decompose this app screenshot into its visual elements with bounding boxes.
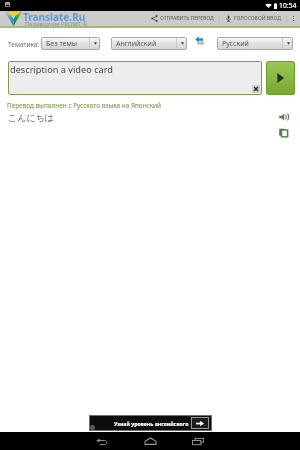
button[interactable]: Русский bbox=[217, 37, 293, 50]
button[interactable]: Share translation bbox=[147, 11, 219, 26]
button[interactable]: Back bbox=[78, 432, 126, 450]
staticText: ОТПРАВИТЬ ПЕРЕВОД bbox=[160, 15, 214, 22]
staticText: こんにちは bbox=[8, 112, 55, 123]
staticText: 10:54 bbox=[279, 1, 297, 10]
staticText: Узнай уровень английского bbox=[114, 420, 189, 427]
button[interactable]: Translate bbox=[266, 61, 295, 95]
button[interactable]: Английский bbox=[111, 37, 187, 50]
button[interactable]: Copy translation bbox=[278, 127, 289, 138]
button[interactable]: Clear text bbox=[252, 85, 260, 93]
staticText: ГОЛОСОВОЙ ВВОД bbox=[234, 15, 281, 22]
button[interactable]: Без темы bbox=[41, 37, 100, 50]
button[interactable]: description a video card bbox=[8, 61, 262, 95]
button[interactable]: Recent apps bbox=[174, 432, 222, 450]
staticText: Без темы bbox=[46, 39, 78, 49]
staticText: Английский bbox=[116, 39, 157, 49]
button[interactable]: Swap languages bbox=[194, 35, 206, 47]
button[interactable]: Home bbox=[126, 432, 174, 450]
staticText: Русский bbox=[222, 39, 249, 49]
other: Voice input bbox=[225, 15, 232, 22]
button[interactable]: Узнай уровень английского bbox=[89, 415, 212, 431]
staticText: Тематика: bbox=[8, 40, 40, 49]
staticText: description a video card bbox=[10, 63, 113, 76]
staticText: Перевод выполнен с Русского языка на Япо… bbox=[7, 101, 162, 110]
button[interactable]: More options bbox=[287, 11, 300, 26]
staticText: Translate.Ru bbox=[23, 10, 86, 24]
button[interactable]: Voice input bbox=[220, 11, 286, 26]
other: Share translation bbox=[151, 15, 158, 22]
button[interactable]: Speak translation bbox=[278, 111, 289, 122]
staticText: Переводчик PROMT © bbox=[25, 20, 88, 28]
